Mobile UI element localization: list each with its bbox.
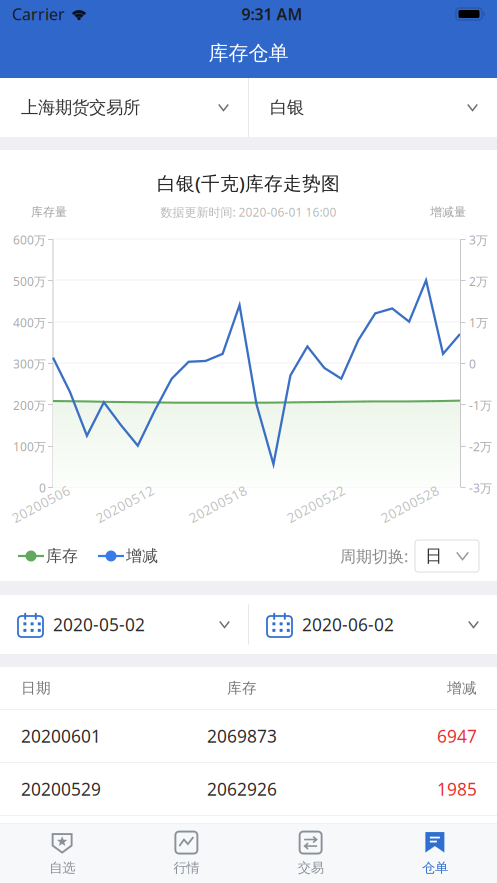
button[interactable]: 2020-05-02: [0, 595, 248, 654]
button[interactable]: 2020-06-02: [249, 595, 497, 654]
staticText: 上海期货交易所: [21, 97, 140, 118]
staticText: 数据更新时间: 2020-06-01 16:00: [160, 204, 336, 220]
staticText: -2万: [469, 439, 492, 455]
staticText: 自选: [49, 860, 75, 876]
staticText: 20200522: [284, 495, 348, 513]
button[interactable]: 20200601: [0, 710, 497, 762]
staticText: 400万: [13, 315, 46, 331]
staticText: 1万: [469, 315, 488, 331]
staticText: 20200529: [21, 777, 101, 800]
staticText: 6947: [437, 724, 477, 747]
button[interactable]: 行情: [124, 823, 248, 883]
staticText: 交易: [298, 860, 324, 876]
staticText: 2062926: [207, 777, 277, 800]
staticText: 1985: [437, 777, 477, 800]
button[interactable]: 上海期货交易所: [0, 78, 248, 137]
staticText: 日期: [21, 679, 51, 697]
staticText: Carrier: [12, 3, 65, 25]
staticText: 白银: [270, 97, 304, 118]
staticText: 20200512: [93, 495, 157, 513]
staticText: 0: [39, 480, 46, 496]
staticText: 增减: [447, 679, 477, 697]
staticText: 白银(千克)库存走势图: [157, 171, 340, 195]
staticText: 2069873: [207, 724, 277, 747]
staticText: 0: [469, 356, 476, 372]
staticText: 20200518: [186, 495, 250, 513]
button[interactable]: 自选: [0, 823, 124, 883]
staticText: 2020-05-02: [53, 613, 145, 636]
staticText: 库存: [46, 546, 78, 566]
button[interactable]: 交易: [248, 823, 373, 883]
staticText: 仓单: [422, 860, 448, 876]
staticText: 3万: [469, 232, 488, 248]
staticText: 库存: [227, 679, 257, 697]
button[interactable]: 白银: [249, 78, 497, 137]
staticText: 增减量: [430, 205, 466, 219]
staticText: 200万: [13, 397, 46, 413]
staticText: 2020-06-02: [302, 613, 394, 636]
staticText: 300万: [13, 356, 46, 372]
staticText: 行情: [173, 860, 199, 876]
staticText: 2万: [469, 273, 488, 289]
staticText: 500万: [13, 273, 46, 289]
button[interactable]: 日: [415, 540, 479, 572]
staticText: 库存仓单: [208, 41, 288, 65]
staticText: -3万: [469, 480, 492, 496]
button[interactable]: 仓单: [373, 823, 497, 883]
staticText: -1万: [469, 397, 492, 413]
button[interactable]: 20200529: [0, 763, 497, 815]
staticText: 9:31 AM: [241, 3, 302, 25]
staticText: 周期切换:: [340, 545, 408, 567]
staticText: 20200601: [21, 724, 101, 747]
staticText: 20200506: [9, 495, 73, 513]
staticText: 增减: [126, 546, 158, 566]
staticText: 600万: [13, 232, 46, 248]
staticText: 库存量: [31, 205, 67, 219]
staticText: 100万: [13, 439, 46, 455]
staticText: 日: [425, 545, 442, 567]
staticText: 20200528: [378, 495, 442, 513]
